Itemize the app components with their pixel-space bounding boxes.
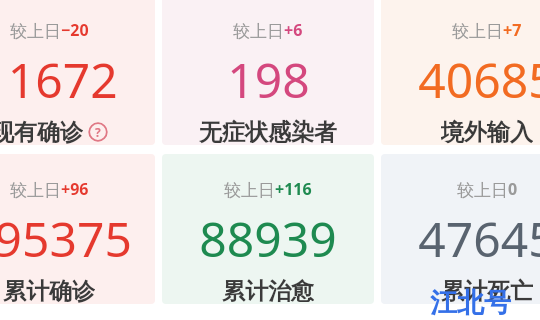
button[interactable]: 较上日 (162, 0, 374, 145)
staticText: +116 (275, 178, 312, 200)
staticText: 较上日 (457, 180, 508, 201)
staticText: 境外输入 (441, 118, 533, 145)
staticText: 江北号 (430, 286, 511, 320)
staticText: 现有确诊 (0, 118, 83, 145)
staticText: +7 (503, 19, 522, 41)
staticText: 995375 (0, 206, 132, 271)
staticText: 较上日 (224, 180, 275, 201)
staticText: 198 (227, 47, 310, 112)
button[interactable]: 较上日 (0, 0, 155, 145)
staticText: 47645 (418, 206, 540, 271)
staticText: 累计治愈 (222, 277, 314, 304)
staticText: +6 (284, 19, 303, 41)
staticText: 较上日 (233, 21, 284, 42)
staticText: 0 (508, 178, 518, 200)
staticText: 较上日 (452, 21, 503, 42)
staticText: 较上日 (10, 180, 61, 201)
staticText: 88939 (199, 206, 337, 271)
button[interactable]: 较上日 (162, 154, 374, 304)
staticText: 累计确诊 (3, 277, 95, 304)
staticText: 40685 (418, 47, 540, 112)
staticText: 累计死亡 (441, 277, 533, 304)
button[interactable]: 较上日 (381, 154, 540, 304)
staticText: −20 (61, 19, 89, 41)
button[interactable]: 较上日 (0, 154, 155, 304)
staticText: 11672 (0, 47, 118, 112)
staticText: +96 (61, 178, 89, 200)
staticText: ? (95, 124, 101, 140)
button[interactable]: 说明 (88, 122, 108, 142)
button[interactable]: 较上日 (381, 0, 540, 145)
staticText: 较上日 (10, 21, 61, 42)
staticText: 无症状感染者 (199, 118, 337, 145)
